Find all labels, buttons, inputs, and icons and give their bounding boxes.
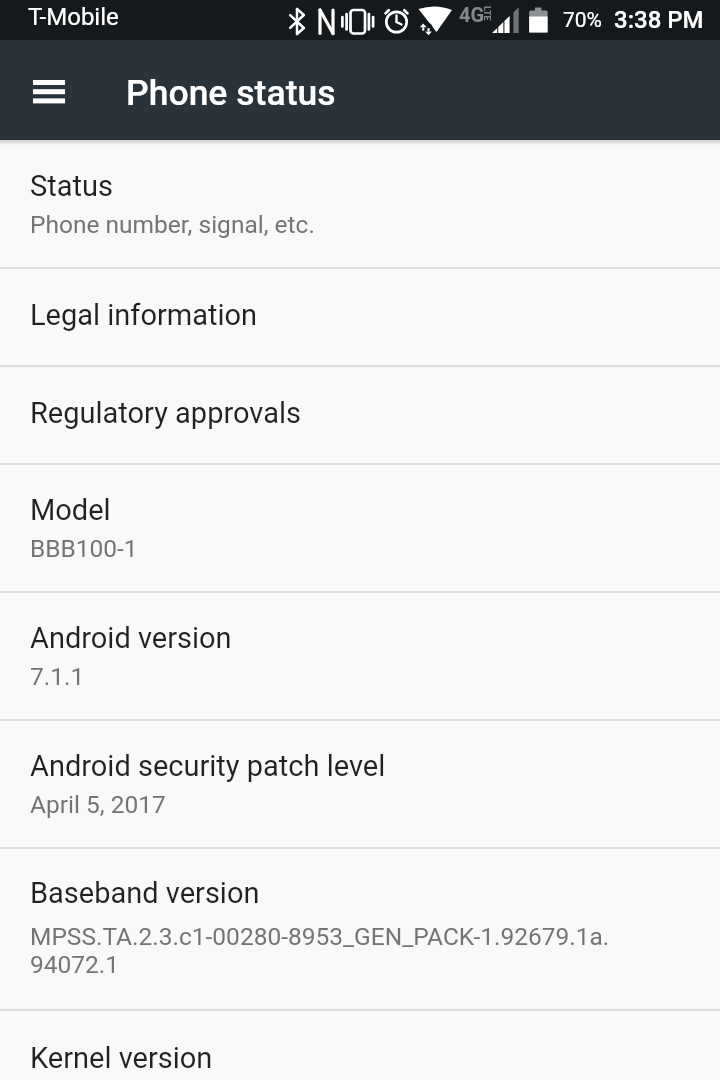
staticText: April 5, 2017 [30,790,166,819]
button[interactable]: Legal information [0,269,720,365]
staticText: Phone status [126,72,336,114]
staticText: 3:38 PM [614,6,704,34]
staticText: Regulatory approvals [30,396,301,430]
staticText: 70% [563,8,602,33]
staticText: LTE [481,6,492,21]
button[interactable]: Regulatory approvals [0,367,720,463]
button[interactable]: Kernel version [0,1011,720,1080]
staticText: Android security patch level [30,749,386,783]
staticText: T-Mobile [28,3,119,31]
button[interactable] [33,80,65,104]
staticText: 7.1.1 [30,662,85,691]
staticText: Phone number, signal, etc. [30,210,315,239]
staticText: 4G [459,3,485,26]
button[interactable]: Status [0,140,720,267]
staticText: Baseband version [30,876,260,910]
staticText: Kernel version [30,1041,213,1075]
button[interactable]: Model [0,465,720,591]
staticText: Model [30,493,111,527]
button[interactable]: Android version [0,593,720,719]
staticText: MPSS.TA.2.3.c1-00280-8953_GEN_PACK-1.926… [30,922,610,979]
staticText: Status [30,169,113,203]
button[interactable]: Android security patch level [0,721,720,847]
button[interactable]: Baseband version [0,849,720,1009]
staticText: BBB100-1 [30,534,138,563]
staticText: Android version [30,621,232,655]
staticText: Legal information [30,298,258,332]
